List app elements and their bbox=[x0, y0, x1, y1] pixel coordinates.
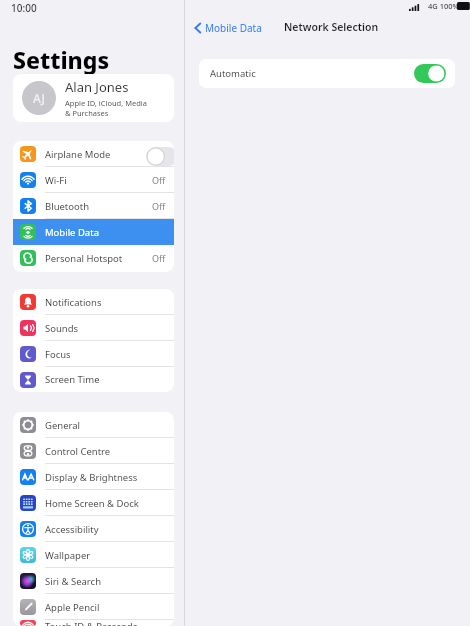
button[interactable]: Bluetooth bbox=[13, 193, 174, 219]
staticText: Alan Jones bbox=[65, 78, 129, 96]
staticText: Accessibility bbox=[45, 523, 166, 536]
staticText: 4G 100% bbox=[428, 1, 459, 11]
button[interactable]: Automatic bbox=[199, 59, 455, 88]
button[interactable]: Notifications bbox=[13, 289, 174, 315]
staticText: Personal Hotspot bbox=[45, 252, 152, 265]
button[interactable]: Siri & Search bbox=[13, 568, 174, 594]
button[interactable]: General bbox=[13, 412, 174, 438]
button[interactable]: Display & Brightness bbox=[13, 464, 174, 490]
staticText: Notifications bbox=[45, 296, 166, 309]
button[interactable]: Toggle off bbox=[146, 147, 174, 166]
button[interactable]: Sounds bbox=[13, 315, 174, 341]
staticText: Off bbox=[152, 252, 166, 264]
staticText: Wallpaper bbox=[45, 549, 166, 562]
button[interactable]: AJ bbox=[13, 74, 174, 122]
staticText: Automatic bbox=[210, 67, 414, 80]
staticText: Apple Pencil bbox=[45, 601, 166, 614]
button[interactable]: Home Screen & Dock bbox=[13, 490, 174, 516]
staticText: Bluetooth bbox=[45, 200, 152, 213]
staticText: Sounds bbox=[45, 322, 166, 335]
button[interactable]: Apple Pencil bbox=[13, 594, 174, 620]
button[interactable]: Personal Hotspot bbox=[13, 245, 174, 271]
staticText: 10:00 bbox=[11, 1, 37, 15]
staticText: Mobile Data bbox=[45, 226, 166, 239]
button[interactable]: Wallpaper bbox=[13, 542, 174, 568]
staticText: Settings bbox=[13, 44, 110, 75]
button[interactable]: Control Centre bbox=[13, 438, 174, 464]
staticText: Airplane Mode bbox=[45, 148, 166, 161]
button[interactable]: Accessibility bbox=[13, 516, 174, 542]
button[interactable]: Touch ID & Passcode bbox=[13, 620, 174, 626]
staticText: Wi-Fi bbox=[45, 174, 152, 187]
staticText: Siri & Search bbox=[45, 575, 166, 588]
staticText: General bbox=[45, 419, 166, 432]
staticText: Display & Brightness bbox=[45, 471, 166, 484]
staticText: Control Centre bbox=[45, 445, 166, 458]
button[interactable]: Focus bbox=[13, 341, 174, 367]
staticText: Off bbox=[152, 200, 166, 212]
staticText: Off bbox=[152, 174, 166, 186]
button[interactable]: Airplane Mode bbox=[13, 141, 174, 167]
staticText: Touch ID & Passcode bbox=[45, 620, 166, 626]
button[interactable]: Mobile Data bbox=[13, 219, 174, 245]
staticText: Focus bbox=[45, 348, 166, 361]
staticText: Home Screen & Dock bbox=[45, 497, 166, 510]
button[interactable]: Screen Time bbox=[13, 367, 174, 392]
button[interactable]: Mobile Data bbox=[194, 19, 262, 37]
staticText: Network Selection bbox=[284, 20, 379, 34]
staticText: AJ bbox=[33, 90, 45, 106]
button[interactable]: Wi-Fi bbox=[13, 167, 174, 193]
staticText: Screen Time bbox=[45, 373, 166, 386]
staticText: Mobile Data bbox=[205, 21, 262, 35]
staticText: Apple ID, iCloud, Media & Purchases bbox=[65, 98, 147, 118]
button[interactable]: Toggle on bbox=[414, 64, 446, 83]
